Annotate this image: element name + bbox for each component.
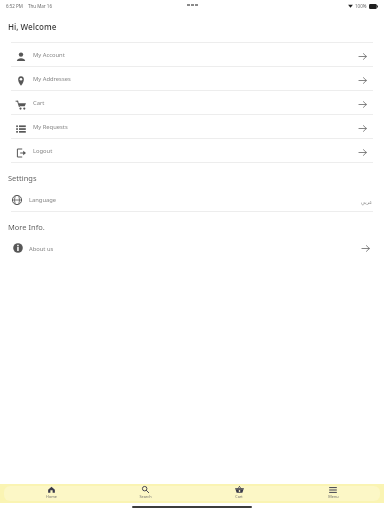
staticText: Settings: [8, 173, 37, 183]
button[interactable]: Menu: [286, 484, 380, 503]
staticText: Menu: [328, 494, 339, 499]
button[interactable]: Logout: [0, 139, 384, 162]
button[interactable]: My Requests: [0, 115, 384, 138]
button[interactable]: Search: [98, 484, 192, 503]
staticText: 6:52 PM: [6, 3, 23, 9]
button[interactable]: Home: [5, 484, 98, 503]
button[interactable]: My Account: [0, 43, 384, 66]
button[interactable]: Cart: [192, 484, 286, 503]
staticText: Language: [29, 196, 57, 204]
staticText: My Addresses: [33, 75, 71, 83]
staticText: Hi, Welcome: [8, 21, 57, 32]
staticText: Cart: [33, 99, 45, 107]
staticText: Search: [139, 494, 152, 499]
staticText: My Requests: [33, 123, 68, 131]
staticText: Home: [46, 494, 57, 499]
staticText: Logout: [33, 147, 53, 155]
button[interactable]: Cart: [0, 91, 384, 114]
button[interactable]: My Addresses: [0, 67, 384, 90]
staticText: Thu Mar 16: [28, 3, 53, 9]
staticText: About us: [29, 245, 54, 253]
button[interactable]: Language: [0, 188, 384, 211]
staticText: More Info.: [8, 222, 45, 232]
staticText: 100%: [355, 3, 367, 9]
staticText: My Account: [33, 51, 65, 59]
staticText: عربي: [361, 199, 373, 205]
staticText: Cart: [235, 494, 243, 499]
button[interactable]: About us: [0, 237, 384, 260]
